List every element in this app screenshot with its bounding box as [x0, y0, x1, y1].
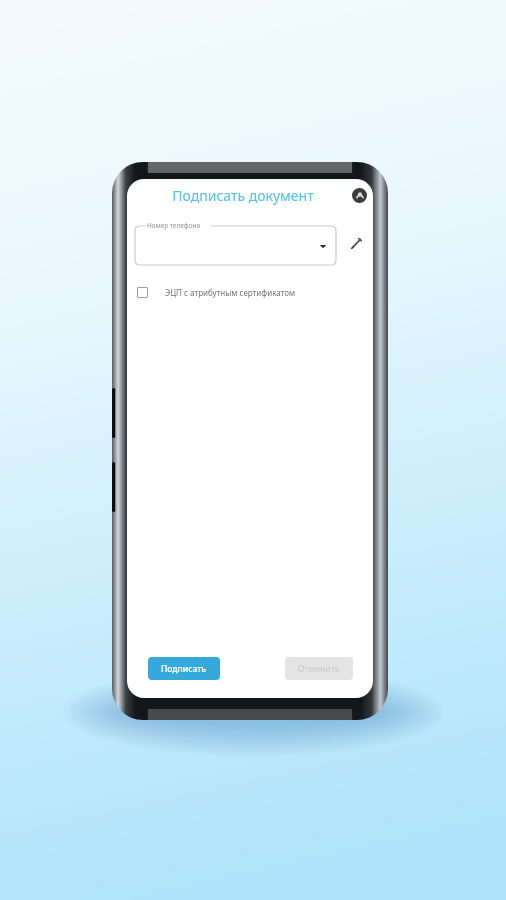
button[interactable]: Edit: [345, 232, 367, 254]
staticText: Подписать: [161, 663, 207, 675]
staticText: Подписать документ: [172, 186, 314, 205]
staticText: Отменить: [298, 663, 340, 675]
button[interactable]: Номер телефона: [135, 220, 337, 266]
button[interactable]: Отменить: [285, 657, 353, 680]
button[interactable]: Подписать: [148, 657, 220, 680]
button[interactable]: ЭЦП с атрибутным сертификатом: [137, 287, 363, 298]
staticText: ЭЦП с атрибутным сертификатом: [165, 287, 296, 298]
button[interactable]: Account: [352, 188, 367, 203]
staticText: Номер телефона: [147, 221, 201, 230]
